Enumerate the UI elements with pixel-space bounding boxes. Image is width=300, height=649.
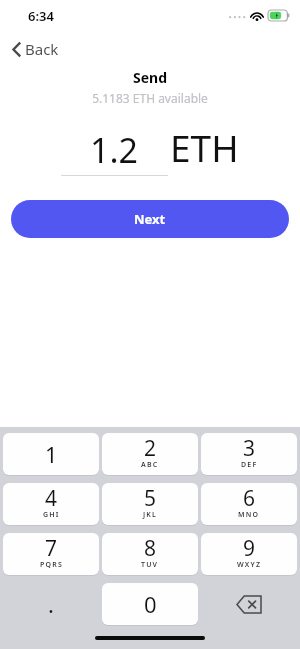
staticText: GHI — [43, 510, 60, 520]
staticText: Send — [0, 68, 300, 87]
staticText: 4 — [45, 484, 58, 513]
button[interactable]: . — [3, 583, 99, 625]
staticText: ETH — [170, 122, 239, 172]
button[interactable]: Back — [6, 36, 65, 62]
staticText: 6:34 — [28, 7, 54, 25]
staticText: ABC — [141, 460, 159, 470]
staticText: JKL — [143, 510, 158, 520]
staticText: 0 — [144, 589, 157, 619]
staticText: WXYZ — [237, 560, 262, 570]
staticText: 1 — [45, 439, 58, 469]
staticText: 9 — [243, 534, 256, 563]
staticText: Next — [134, 210, 166, 228]
button[interactable]: 8 — [102, 533, 198, 575]
button[interactable]: 9 — [201, 533, 297, 575]
staticText: PQRS — [40, 560, 63, 570]
staticText: 8 — [144, 534, 157, 563]
button[interactable]: 3 — [201, 433, 297, 475]
staticText: 5.1183 ETH available — [0, 90, 300, 106]
staticText: 3 — [243, 434, 256, 463]
button[interactable]: Next — [11, 200, 289, 238]
button[interactable]: 5 — [102, 483, 198, 525]
button[interactable]: 1.2 — [61, 127, 168, 173]
staticText: TUV — [141, 560, 159, 570]
button[interactable]: 0 — [102, 583, 198, 625]
button[interactable]: 1 — [3, 433, 99, 475]
staticText: 5 — [144, 484, 157, 513]
button[interactable]: 2 — [102, 433, 198, 475]
staticText: Back — [25, 39, 59, 59]
staticText: 2 — [144, 434, 157, 463]
button[interactable]: 7 — [3, 533, 99, 575]
staticText: . — [48, 589, 54, 619]
staticText: 7 — [45, 534, 58, 563]
button[interactable]: 4 — [3, 483, 99, 525]
button[interactable]: 6 — [201, 483, 297, 525]
staticText: MNO — [238, 510, 260, 520]
staticText: 6 — [243, 484, 256, 513]
staticText: DEF — [241, 460, 258, 470]
button[interactable]: Backspace — [201, 583, 297, 625]
staticText: 1.2 — [90, 127, 139, 173]
